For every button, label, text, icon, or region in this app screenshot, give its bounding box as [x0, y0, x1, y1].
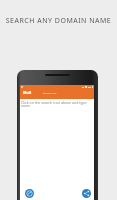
- staticText: Click on the search icon above and type …: [21, 100, 91, 105]
- staticText: whoisdns.org: [43, 92, 57, 95]
- staticText: SEARCH ANY DOMAIN NAME: [0, 16, 117, 26]
- staticText: WhoIS: [23, 91, 32, 95]
- staticText: name: [21, 103, 30, 107]
- button[interactable]: Search domain: [25, 189, 34, 198]
- button[interactable]: Share: [82, 189, 91, 198]
